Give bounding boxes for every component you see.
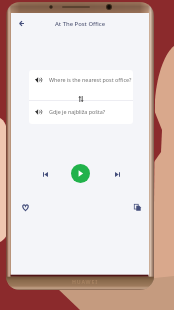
button[interactable]: Gdje je najbliža pošta? [29,100,133,124]
button[interactable]: Back [11,13,31,33]
staticText: HUAWEI [72,278,98,285]
staticText: Gdje je najbliža pošta? [49,108,106,115]
staticText: At The Post Office [55,20,106,28]
button[interactable]: Swap languages [75,93,86,104]
staticText: Where is the nearest post office? [49,76,132,83]
button[interactable]: Where is the nearest post office? [29,70,133,100]
button[interactable]: Copy [130,200,144,214]
button[interactable]: Play [71,164,90,183]
button[interactable]: Next [110,167,124,181]
button[interactable]: Favorite [18,200,32,214]
button[interactable]: Previous [38,167,52,181]
